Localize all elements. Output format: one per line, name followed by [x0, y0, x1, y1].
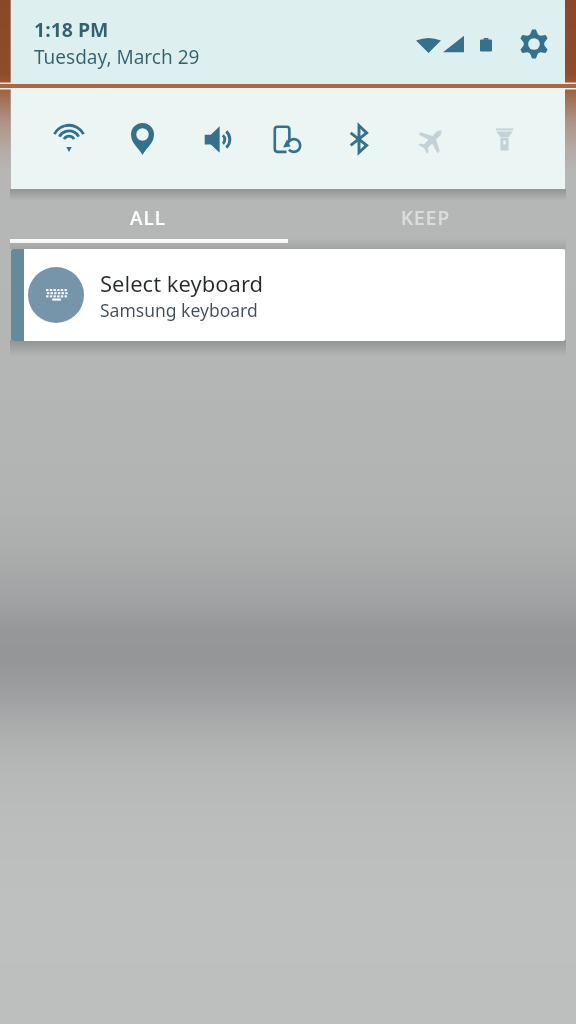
button[interactable]: Sound — [186, 111, 242, 167]
staticText: Samsung keyboard — [100, 298, 258, 322]
button[interactable]: Location — [114, 111, 170, 167]
button[interactable]: Auto rotate — [259, 111, 315, 167]
staticText: Select keyboard — [100, 268, 264, 298]
button[interactable]: Flashlight — [476, 111, 532, 167]
button[interactable]: Wi-Fi — [41, 111, 97, 167]
staticText: Tuesday, March 29 — [34, 44, 200, 70]
button[interactable]: KEEP — [287, 189, 565, 246]
staticText: 1:18 PM — [34, 16, 109, 43]
staticText: KEEP — [401, 205, 451, 231]
button[interactable]: 1:18 PM — [11, 0, 565, 86]
button[interactable]: Airplane mode — [404, 111, 460, 167]
button[interactable]: Select keyboard — [11, 249, 565, 341]
button[interactable]: Settings — [518, 28, 549, 59]
button[interactable]: Bluetooth — [331, 111, 387, 167]
staticText: ALL — [130, 205, 167, 231]
button[interactable]: ALL — [10, 189, 287, 246]
